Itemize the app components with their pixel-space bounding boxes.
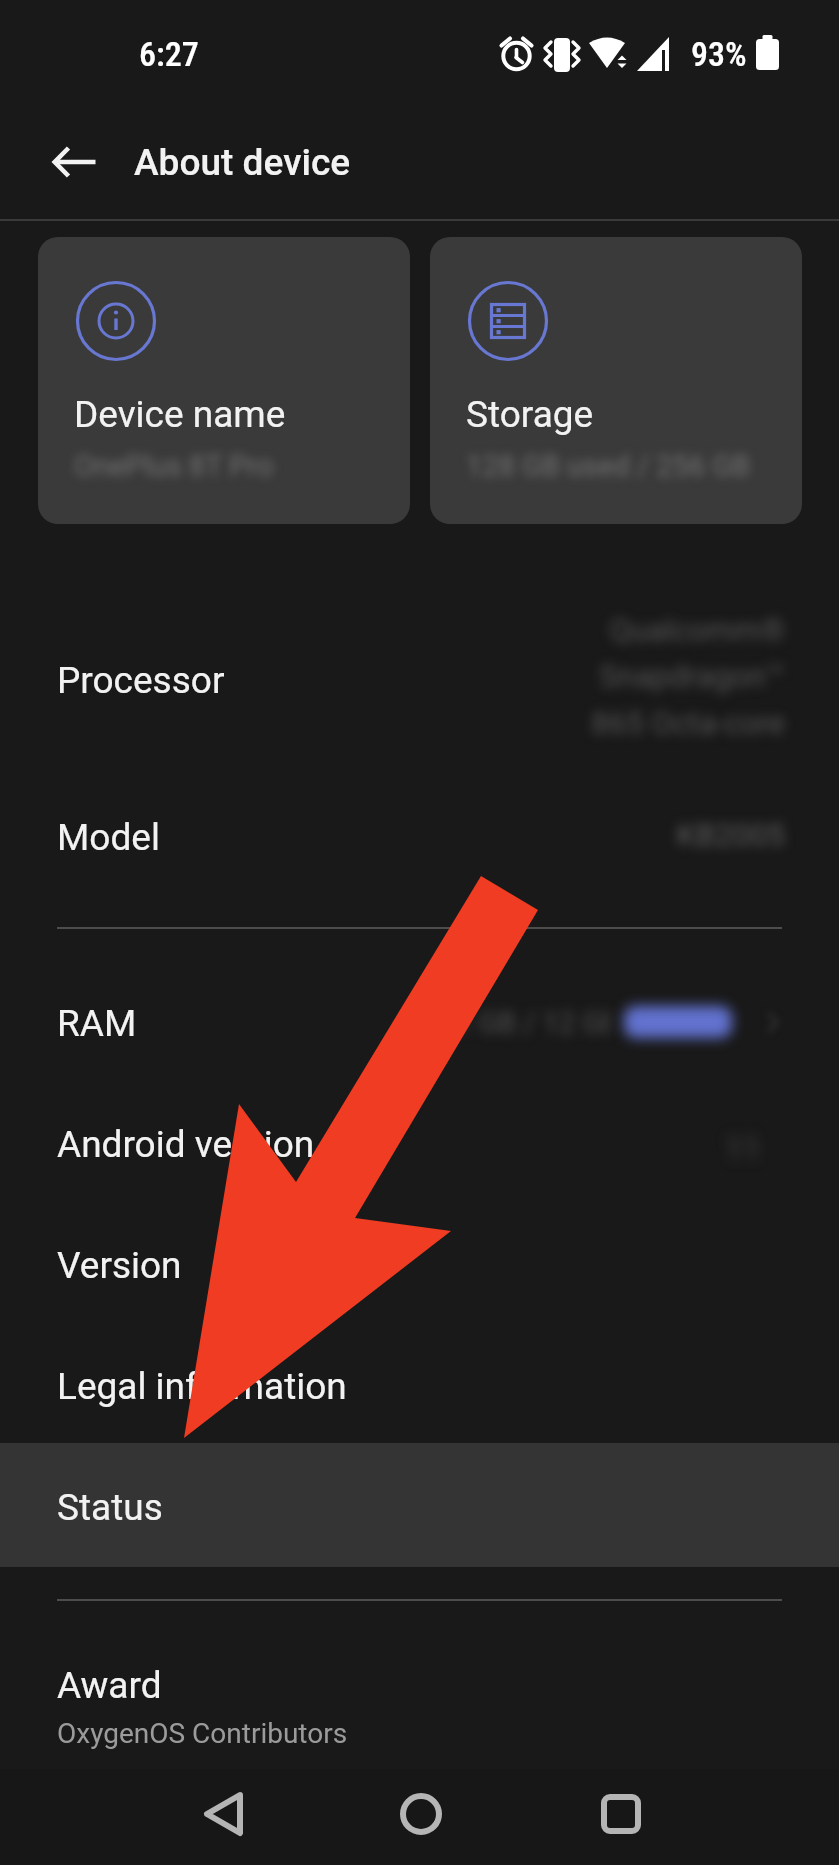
staticText: 128 GB used / 256 GB xyxy=(466,449,751,483)
staticText: KB2005 xyxy=(440,817,785,853)
button[interactable]: Storage xyxy=(430,237,802,524)
button[interactable]: Award xyxy=(0,1645,839,1769)
staticText: Award xyxy=(57,1664,162,1707)
button[interactable]: Status xyxy=(0,1443,839,1567)
staticText: 6.1 GB / 12 GB xyxy=(430,1006,610,1040)
staticText: RAM xyxy=(57,1002,137,1045)
staticText: OxygenOS Contributors xyxy=(57,1717,348,1750)
button[interactable]: Back xyxy=(164,1769,284,1865)
button[interactable]: Legal information xyxy=(0,1326,839,1447)
button[interactable]: Home xyxy=(361,1769,481,1865)
staticText: Device name xyxy=(74,393,286,436)
staticText: Storage xyxy=(466,393,594,436)
button[interactable]: Device name xyxy=(38,237,410,524)
button[interactable]: Android version xyxy=(0,1084,839,1205)
button[interactable]: Model xyxy=(0,777,839,898)
staticText: 6:27 xyxy=(139,34,199,74)
staticText: About device xyxy=(134,141,351,184)
button[interactable]: Version xyxy=(0,1205,839,1326)
staticText: Qualcomm® Snapdragon™ 865 Octa-core xyxy=(440,612,785,741)
staticText: Version xyxy=(57,1244,182,1287)
staticText: Android version xyxy=(57,1123,315,1166)
staticText: Model xyxy=(57,816,160,859)
button[interactable]: Back xyxy=(38,125,112,199)
staticText: Processor xyxy=(57,659,225,702)
staticText: OnePlus 8T Pro xyxy=(74,449,274,483)
button[interactable]: Recent apps xyxy=(561,1769,681,1865)
staticText: Status xyxy=(57,1486,163,1529)
button[interactable]: Processor xyxy=(0,620,839,741)
staticText: Legal information xyxy=(57,1365,347,1408)
staticText: 93% xyxy=(691,34,747,74)
button[interactable]: RAM xyxy=(0,963,839,1084)
